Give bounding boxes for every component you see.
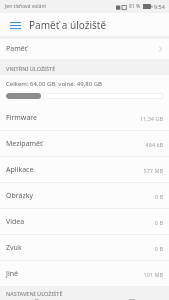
- staticText: 9:54: [154, 3, 165, 10]
- staticText: 101 MB: [143, 271, 163, 278]
- button[interactable]: Aplikace: [0, 157, 169, 183]
- staticText: 0 B: [154, 219, 163, 226]
- staticText: 0 B: [154, 193, 163, 200]
- button[interactable]: Videa: [0, 209, 169, 235]
- staticText: Aplikace: [6, 165, 34, 175]
- button[interactable]: Mezipaměť: [0, 131, 169, 157]
- staticText: NASTAVENÍ ÚLOŽIŠTĚ: [6, 290, 63, 297]
- staticText: 81 %: [129, 3, 141, 10]
- button[interactable]: Paměť: [0, 39, 169, 59]
- staticText: Obrázky: [6, 191, 34, 201]
- staticText: Celkem: 64,00 GB, volné: 49,80 GB: [6, 80, 103, 88]
- staticText: Jiné: [6, 269, 18, 279]
- staticText: Videa: [6, 217, 25, 227]
- staticText: Paměť: [6, 44, 28, 54]
- button[interactable]: Jiné: [0, 261, 169, 287]
- staticText: 577 MB: [143, 167, 163, 174]
- button[interactable]: Firmware: [0, 105, 169, 131]
- staticText: 0 B: [154, 245, 163, 252]
- button[interactable]: Obrázky: [0, 183, 169, 209]
- staticText: Firmware: [6, 113, 38, 123]
- button[interactable]: Zvuk: [0, 235, 169, 261]
- staticText: Mezipaměť: [6, 139, 43, 149]
- staticText: 11,34 GB: [139, 115, 163, 122]
- staticText: Paměť a úložiště: [29, 18, 107, 32]
- staticText: Jen tísňová volání: [5, 3, 46, 10]
- staticText: 464 kB: [145, 141, 163, 148]
- staticText: Zvuk: [6, 243, 22, 253]
- button[interactable]: Menu: [6, 16, 24, 34]
- staticText: VNITŘNÍ ÚLOŽIŠTĚ: [6, 65, 56, 72]
